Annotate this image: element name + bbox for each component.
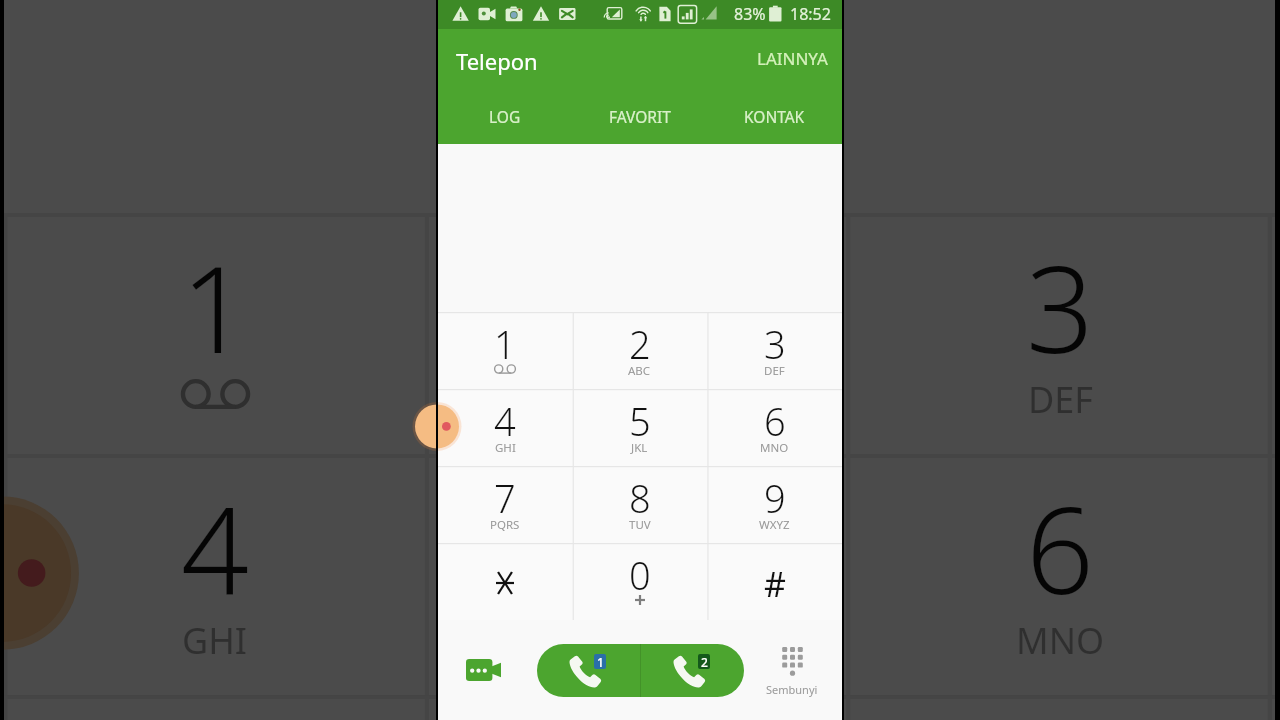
- staticText: 83%: [734, 3, 766, 25]
- staticText: DEF: [1028, 375, 1093, 424]
- button[interactable]: 1: [438, 312, 572, 389]
- staticText: 3: [764, 318, 786, 370]
- staticText: JKL: [631, 440, 648, 456]
- button[interactable]: LOG: [438, 99, 572, 144]
- staticText: Telepon: [456, 46, 538, 76]
- staticText: 6: [1026, 467, 1094, 629]
- staticText: 18:52: [790, 3, 831, 25]
- staticText: #: [764, 561, 786, 607]
- button[interactable]: LAINNYA: [743, 41, 842, 76]
- button[interactable]: 4: [438, 389, 572, 466]
- staticText: ABC: [628, 363, 651, 379]
- staticText: 5: [629, 395, 651, 447]
- staticText: 6: [764, 395, 786, 447]
- staticText: WXYZ: [759, 517, 790, 533]
- staticText: KONTAK: [744, 106, 805, 127]
- staticText: 0: [629, 549, 651, 601]
- staticText: MNO: [1016, 616, 1105, 665]
- staticText: 4: [181, 467, 249, 629]
- button[interactable]: Video call: [458, 645, 508, 695]
- staticText: TUV: [629, 517, 651, 533]
- button[interactable]: 7: [438, 466, 572, 543]
- button[interactable]: #: [707, 543, 842, 620]
- staticText: 2: [629, 318, 651, 370]
- button[interactable]: 8: [572, 466, 707, 543]
- button[interactable]: 9: [707, 466, 842, 543]
- button[interactable]: 0: [572, 543, 707, 620]
- button[interactable]: KONTAK: [707, 99, 842, 144]
- button[interactable]: Call with SIM 2: [641, 644, 744, 697]
- staticText: 4: [494, 395, 516, 447]
- button[interactable]: FAVORIT: [572, 99, 707, 144]
- button[interactable]: 2: [572, 312, 707, 389]
- button[interactable]: 6: [707, 389, 842, 466]
- staticText: MNO: [760, 440, 789, 456]
- staticText: 8: [629, 472, 651, 524]
- button[interactable]: 3: [707, 312, 842, 389]
- button[interactable]: 5: [572, 389, 707, 466]
- staticText: FAVORIT: [609, 106, 671, 127]
- staticText: 9: [764, 472, 786, 524]
- staticText: LAINNYA: [757, 47, 828, 70]
- button[interactable]: Call with SIM 1: [537, 644, 640, 697]
- staticText: 3: [1026, 226, 1094, 388]
- staticText: 1: [597, 654, 604, 669]
- staticText: PQRS: [490, 517, 520, 533]
- staticText: GHI: [495, 440, 516, 456]
- staticText: DEF: [764, 363, 785, 379]
- staticText: 7: [494, 472, 516, 524]
- staticText: 2: [701, 654, 708, 669]
- button[interactable]: [438, 543, 572, 620]
- staticText: LOG: [489, 106, 521, 127]
- button[interactable]: Sembunyi: [758, 643, 826, 701]
- staticText: 1: [494, 318, 516, 370]
- staticText: Sembunyi: [766, 682, 818, 697]
- staticText: GHI: [182, 616, 248, 665]
- staticText: 1: [181, 226, 249, 388]
